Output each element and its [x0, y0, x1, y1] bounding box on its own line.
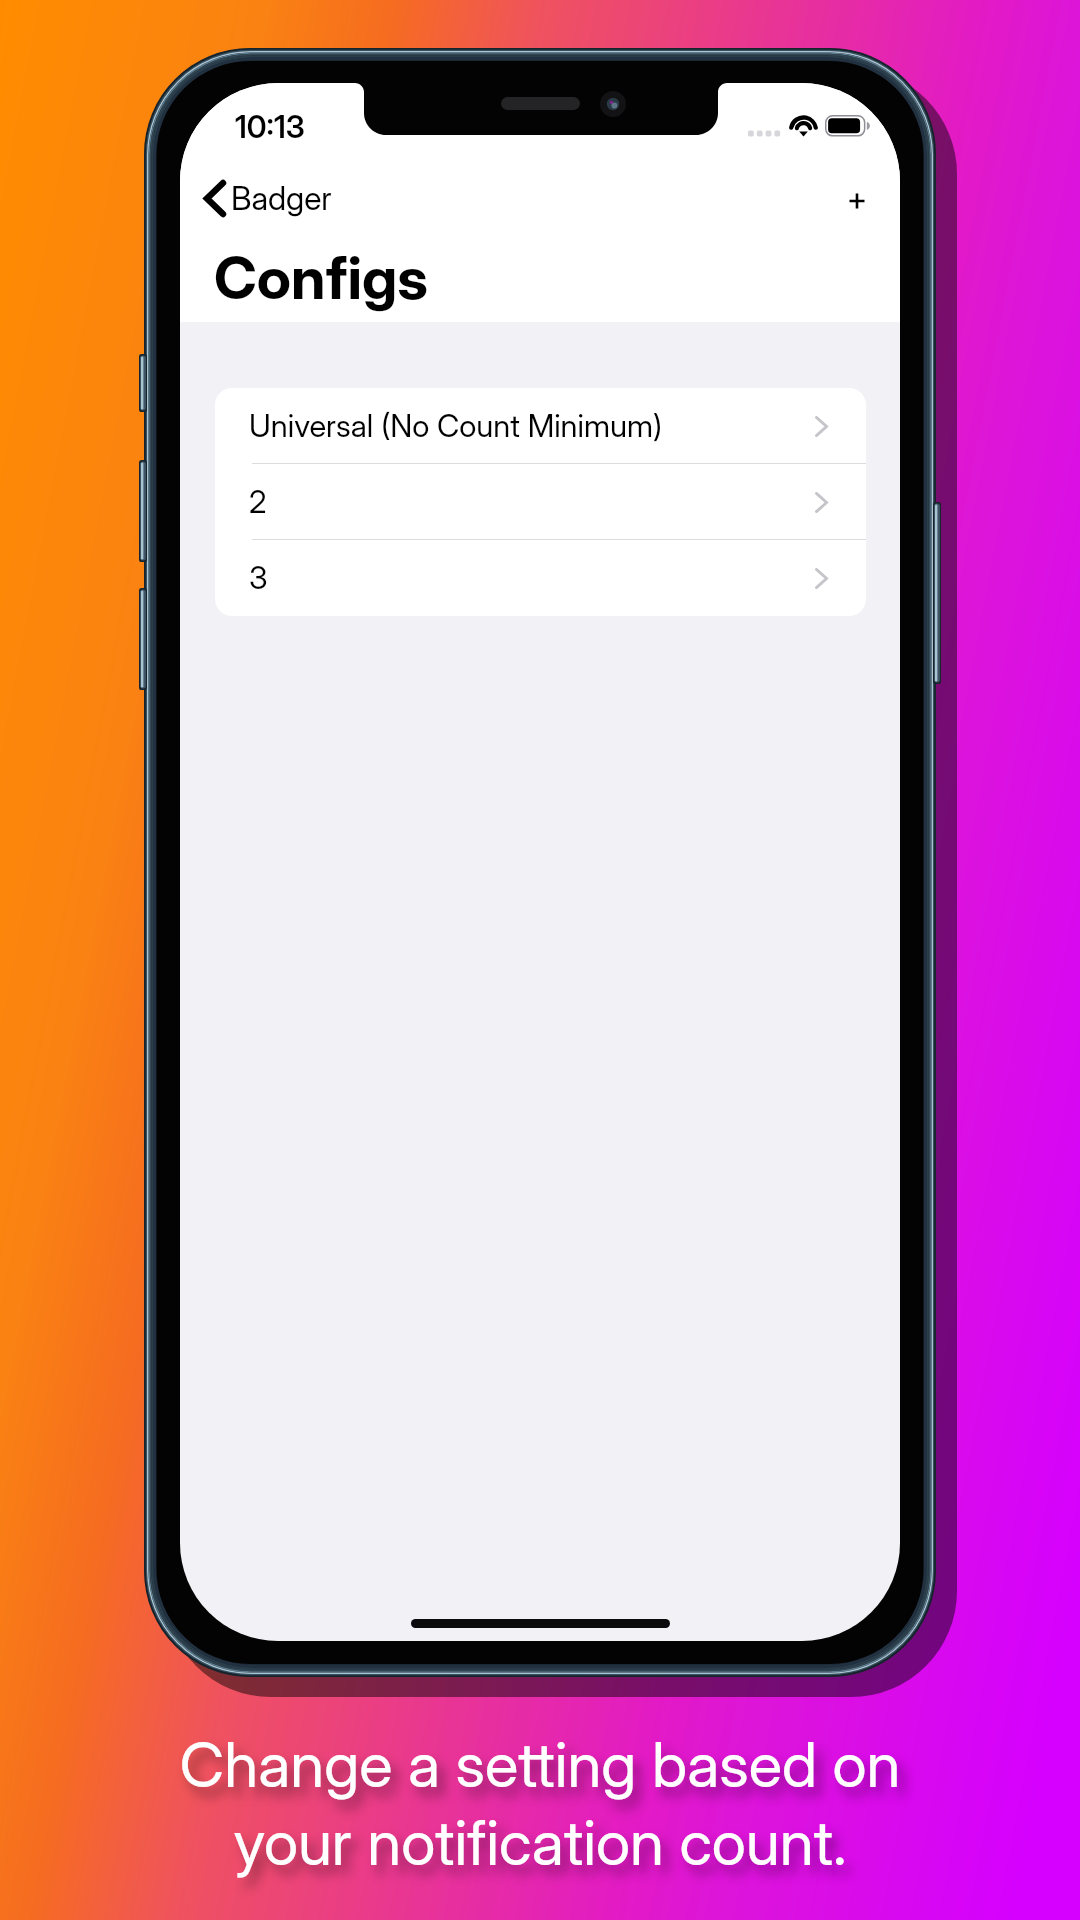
button[interactable]: Universal (No Count Minimum): [215, 388, 866, 464]
button[interactable]: 2: [215, 464, 866, 540]
staticText: Universal (No Count Minimum): [249, 407, 663, 445]
staticText: 10:13: [235, 108, 305, 146]
staticText: Change a setting based on your notificat…: [0, 1727, 1080, 1880]
button[interactable]: 3: [215, 540, 866, 616]
staticText: Badger: [231, 179, 332, 218]
staticText: 2: [249, 483, 267, 521]
button[interactable]: Badger: [198, 173, 342, 224]
staticText: 3: [249, 559, 268, 597]
staticText: Configs: [214, 242, 428, 313]
button[interactable]: Add: [825, 169, 889, 233]
